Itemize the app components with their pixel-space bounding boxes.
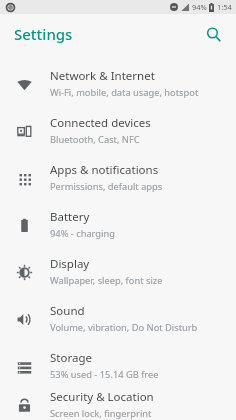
button[interactable]: Connected devices <box>0 107 236 154</box>
button[interactable]: Storage <box>0 342 236 389</box>
staticText: 1:54 <box>217 2 232 12</box>
button[interactable]: Sound <box>0 295 236 342</box>
staticText: Volume, vibration, Do Not Disturb <box>50 321 198 334</box>
button[interactable]: Display <box>0 248 236 295</box>
staticText: 94% - charging <box>50 227 115 240</box>
button[interactable]: Apps & notifications <box>0 154 236 201</box>
staticText: Permissions, default apps <box>50 180 163 193</box>
staticText: Wi-Fi, mobile, data usage, hotspot <box>50 86 199 99</box>
staticText: Settings <box>14 24 73 44</box>
staticText: Apps & notifications <box>50 162 159 178</box>
staticText: Sound <box>50 303 85 319</box>
staticText: Network & Internet <box>50 68 155 84</box>
staticText: 53% used - 15.14 GB free <box>50 368 159 381</box>
staticText: Storage <box>50 350 92 366</box>
staticText: 94% <box>192 2 207 12</box>
staticText: Security & Location <box>50 389 154 405</box>
button[interactable]: Network & Internet <box>0 60 236 107</box>
staticText: Bluetooth, Cast, NFC <box>50 133 140 146</box>
staticText: Battery <box>50 209 90 225</box>
staticText: Display <box>50 256 90 272</box>
button[interactable]: Security & Location <box>0 389 236 420</box>
staticText: Wallpaper, sleep, font size <box>50 274 163 287</box>
staticText: Connected devices <box>50 115 151 131</box>
button[interactable]: Battery <box>0 201 236 248</box>
staticText: Screen lock, fingerprint <box>50 407 152 420</box>
button[interactable]: Search <box>199 20 227 48</box>
